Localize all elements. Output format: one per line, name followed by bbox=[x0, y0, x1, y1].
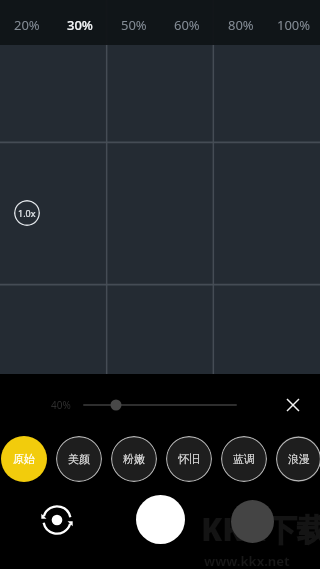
button[interactable]: 美颜 bbox=[56, 436, 102, 482]
staticText: 蓝调 bbox=[233, 452, 255, 466]
button[interactable]: Gallery bbox=[231, 500, 274, 543]
button[interactable]: Switch camera bbox=[38, 501, 76, 539]
staticText: 60% bbox=[174, 16, 200, 34]
staticText: 50% bbox=[121, 16, 147, 34]
staticText: 浪漫 bbox=[288, 452, 310, 466]
button[interactable]: 蓝调 bbox=[221, 436, 267, 482]
staticText: 40% bbox=[51, 398, 71, 412]
button[interactable]: 怀旧 bbox=[166, 436, 212, 482]
staticText: 1.0x bbox=[18, 207, 36, 219]
staticText: 20% bbox=[14, 16, 40, 34]
staticText: 80% bbox=[228, 16, 254, 34]
staticText: 100% bbox=[277, 16, 311, 34]
button[interactable]: Close bbox=[277, 389, 309, 421]
staticText: 原始 bbox=[13, 452, 35, 466]
staticText: 粉嫩 bbox=[123, 452, 145, 466]
staticText: www.kkx.net bbox=[204, 552, 290, 569]
button[interactable]: 100% bbox=[267, 2, 320, 47]
button[interactable]: Intensity slider bbox=[80, 393, 240, 417]
button[interactable]: 粉嫩 bbox=[111, 436, 157, 482]
button[interactable]: 20% bbox=[0, 2, 53, 47]
button[interactable]: 原始 bbox=[1, 436, 47, 482]
staticText: 怀旧 bbox=[178, 452, 200, 466]
staticText: KKX下载 bbox=[201, 508, 320, 550]
button[interactable]: 1.0x bbox=[14, 200, 40, 226]
staticText: 美颜 bbox=[68, 452, 90, 466]
button[interactable]: 60% bbox=[160, 2, 213, 47]
button[interactable]: 30% bbox=[53, 2, 106, 47]
button[interactable]: 50% bbox=[107, 2, 160, 47]
staticText: 30% bbox=[67, 16, 93, 34]
button[interactable]: 80% bbox=[214, 2, 267, 47]
button[interactable]: 浪漫 bbox=[276, 436, 320, 482]
button[interactable]: Take photo bbox=[136, 495, 185, 544]
